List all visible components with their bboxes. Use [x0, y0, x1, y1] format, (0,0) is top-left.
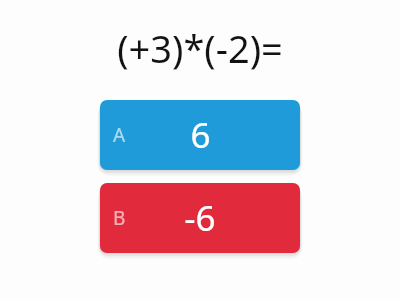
staticText: 6	[190, 111, 211, 159]
button[interactable]: B	[100, 183, 300, 253]
staticText: B	[113, 205, 126, 231]
staticText: -6	[184, 194, 216, 242]
staticText: A	[113, 122, 126, 148]
staticText: (+3)*(-2)=	[0, 22, 400, 74]
button[interactable]: A	[100, 100, 300, 170]
